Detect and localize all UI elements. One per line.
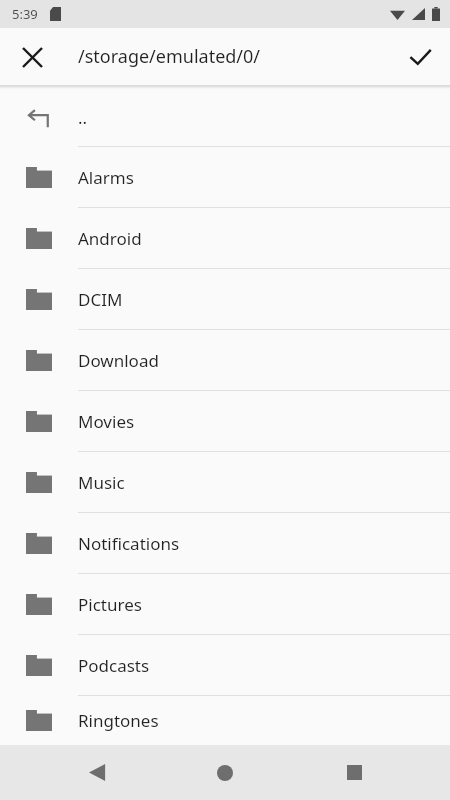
button[interactable]: Movies [0, 391, 450, 451]
staticText: Alarms [78, 166, 134, 189]
staticText: Podcasts [78, 654, 150, 677]
button[interactable]: Pictures [0, 574, 450, 634]
button[interactable]: Confirm [398, 35, 442, 79]
button[interactable]: Back [65, 745, 129, 800]
staticText: DCIM [78, 288, 123, 311]
staticText: Music [78, 471, 125, 494]
staticText: Download [78, 349, 159, 372]
button[interactable]: DCIM [0, 269, 450, 329]
staticText: Movies [78, 410, 135, 433]
staticText: /storage/emulated/0/ [78, 44, 261, 69]
staticText: 5:39 [12, 5, 38, 23]
button[interactable]: .. [0, 89, 450, 146]
staticText: Pictures [78, 593, 142, 616]
staticText: Notifications [78, 532, 180, 555]
button[interactable]: Alarms [0, 147, 450, 207]
button[interactable]: Podcasts [0, 635, 450, 695]
button[interactable]: Notifications [0, 513, 450, 573]
button[interactable]: Recent apps [322, 745, 386, 800]
staticText: Ringtones [78, 709, 159, 732]
button[interactable]: Home [193, 745, 257, 800]
staticText: Android [78, 227, 142, 250]
staticText: .. [78, 106, 88, 129]
button[interactable]: Ringtones [0, 696, 450, 745]
button[interactable]: Music [0, 452, 450, 512]
button[interactable]: Android [0, 208, 450, 268]
button[interactable]: Close [10, 35, 54, 79]
button[interactable]: Download [0, 330, 450, 390]
